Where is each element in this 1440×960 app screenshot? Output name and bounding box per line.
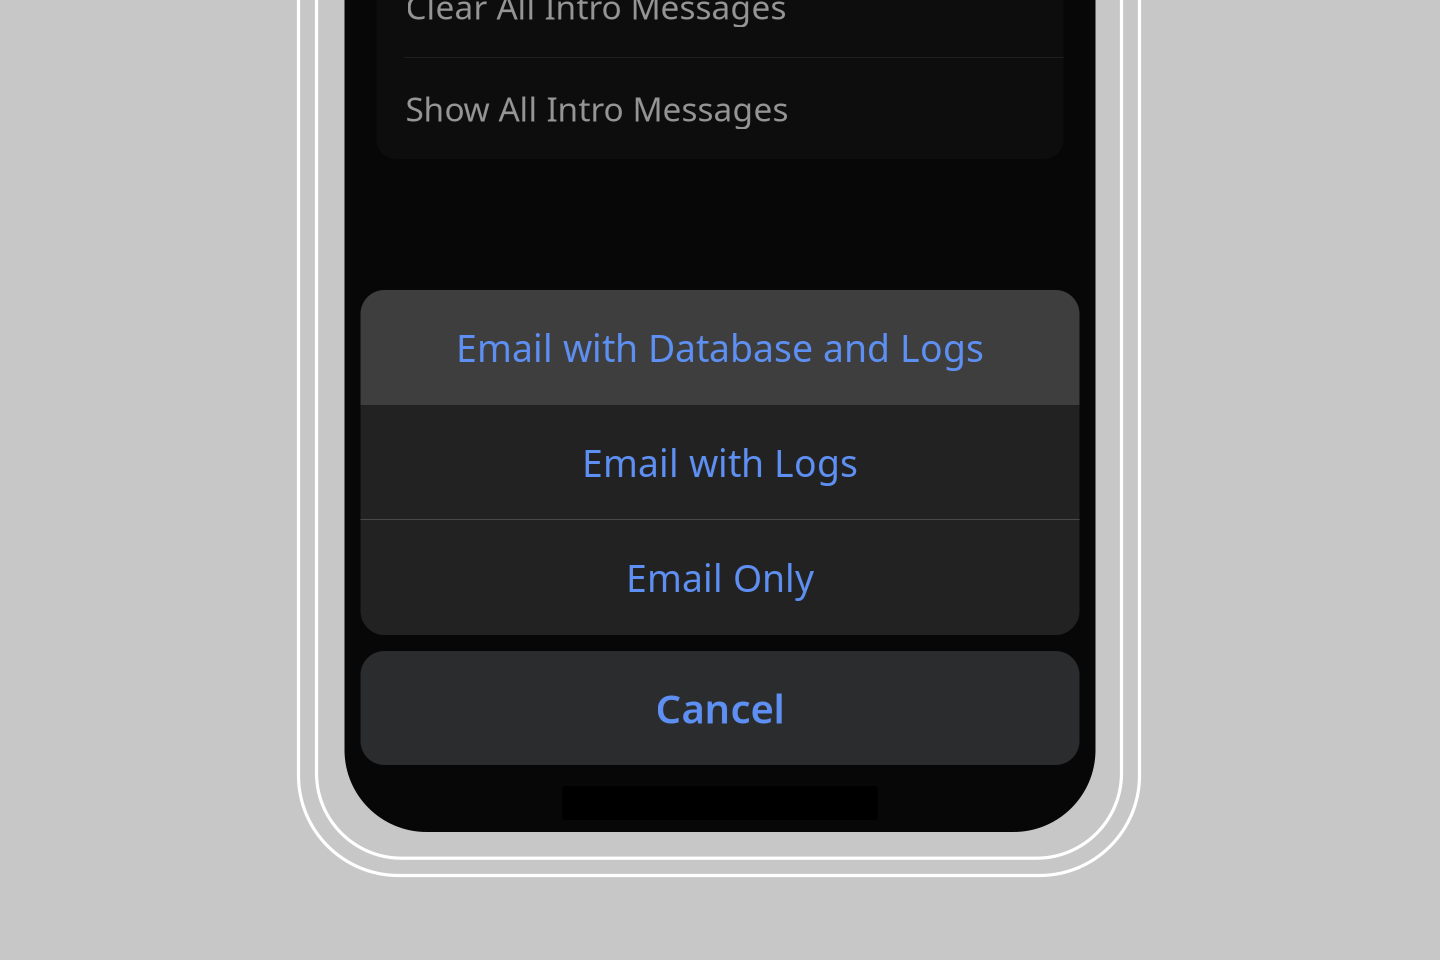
button[interactable]: Clear All Intro Messages (376, 0, 1063, 57)
staticText: Email with Logs (582, 438, 858, 487)
button[interactable]: Show All Intro Messages (376, 58, 1063, 159)
staticText: Email with Database and Logs (456, 323, 984, 372)
staticText: Cancel (655, 681, 784, 734)
button[interactable]: Email with Logs (360, 405, 1079, 520)
staticText: Clear All Intro Messages (405, 0, 786, 29)
button[interactable]: Cancel (360, 651, 1079, 765)
staticText: Show All Intro Messages (405, 86, 788, 131)
button[interactable]: Email Only (360, 520, 1079, 635)
staticText: Email Only (626, 553, 814, 602)
button[interactable]: Email with Database and Logs (360, 290, 1079, 405)
